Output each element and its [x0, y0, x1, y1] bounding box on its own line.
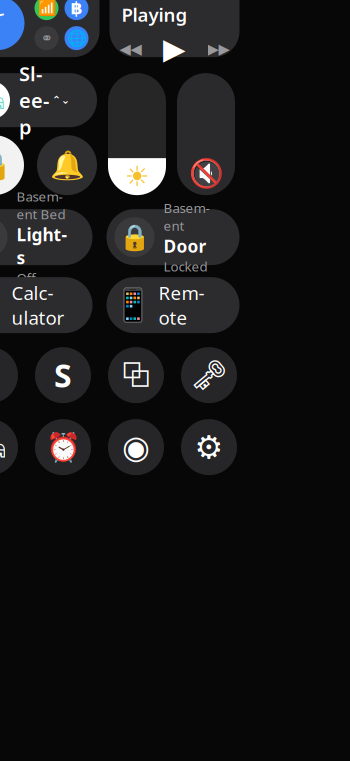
staticText: ⧉: [121, 358, 150, 392]
button[interactable]: Brightness: [108, 73, 166, 195]
button[interactable]: Rotation Lock: [0, 135, 24, 195]
button[interactable]: Settings: [181, 419, 237, 475]
staticText: 📱: [112, 287, 152, 323]
staticText: 🌐: [66, 29, 86, 47]
button[interactable]: Cellular Data: [34, 0, 58, 20]
button[interactable]: Car Keys: [181, 347, 237, 403]
staticText: ⚭: [40, 30, 52, 46]
button[interactable]: 🔒: [106, 209, 239, 265]
button[interactable]: Sleep Mode: [0, 419, 18, 475]
staticText: Basement Bed: [16, 188, 65, 223]
staticText: Lights: [16, 223, 67, 269]
button[interactable]: Wi-Fi: [0, 0, 24, 50]
button[interactable]: Next: [200, 35, 236, 63]
button[interactable]: 🛏: [0, 73, 97, 127]
button[interactable]: 💡: [0, 209, 92, 265]
staticText: ⌃⌄: [52, 94, 70, 106]
staticText: ⏰: [45, 431, 80, 463]
staticText: 🛏: [0, 87, 5, 113]
button[interactable]: 📱: [106, 277, 239, 333]
button[interactable]: Silent Mode: [37, 135, 97, 195]
staticText: 💡: [0, 223, 3, 252]
staticText: 📶: [37, 0, 55, 17]
button[interactable]: Low Power Mode: [0, 347, 18, 403]
staticText: Off: [16, 269, 35, 287]
button[interactable]: Bluetooth: [64, 0, 88, 20]
staticText: 🗝: [190, 358, 227, 392]
staticText: Not Playing: [121, 0, 187, 27]
staticText: 🛏: [0, 432, 7, 462]
staticText: Sleep: [19, 60, 49, 140]
button[interactable]: Play: [156, 35, 192, 63]
staticText: Calculator: [11, 280, 64, 330]
staticText: 🔔: [49, 149, 84, 181]
staticText: S: [54, 354, 72, 396]
button[interactable]: VPN: [64, 26, 88, 50]
staticText: Door: [163, 234, 206, 257]
staticText: ▶: [163, 32, 186, 66]
staticText: Basement: [163, 199, 209, 234]
staticText: 🔇: [188, 157, 223, 189]
staticText: 🔒: [118, 223, 150, 252]
staticText: Remote: [158, 280, 204, 330]
staticText: 🔒: [0, 149, 11, 181]
staticText: ◀◀: [119, 41, 141, 57]
button[interactable]: Screen Mirroring: [108, 347, 164, 403]
staticText: ◜: [0, 5, 3, 41]
button[interactable]: Personal Hotspot: [34, 26, 58, 50]
staticText: ⚙: [194, 429, 223, 465]
staticText: ◉: [122, 429, 150, 465]
button[interactable]: 🖩: [0, 277, 92, 333]
staticText: ฿: [70, 0, 82, 18]
button[interactable]: Screen Record: [108, 419, 164, 475]
button[interactable]: Shazam: [35, 347, 91, 403]
staticText: ☀: [124, 161, 149, 192]
button[interactable]: Volume: [177, 73, 235, 195]
staticText: Locked: [163, 257, 207, 275]
button[interactable]: Previous: [112, 35, 148, 63]
staticText: ▶▶: [207, 41, 229, 57]
button[interactable]: Alarm: [35, 419, 91, 475]
